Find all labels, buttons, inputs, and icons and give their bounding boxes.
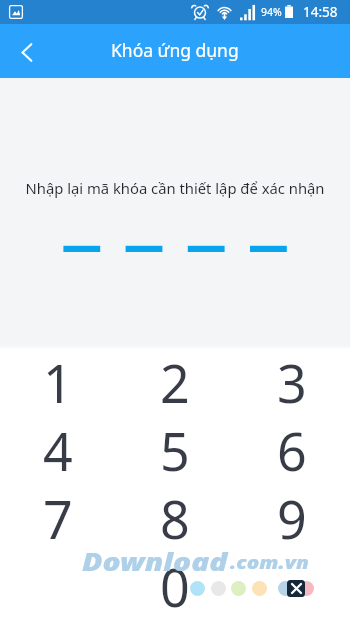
staticText: Download (82, 544, 227, 578)
staticText: 7 (43, 483, 73, 551)
staticText: 14:58 (303, 3, 338, 21)
button[interactable] (0, 551, 116, 619)
staticText: 0 (160, 551, 190, 619)
staticText: 94% (261, 5, 282, 19)
staticText: Nhập lại mã khóa cần thiết lập để xác nh… (0, 178, 350, 198)
button[interactable]: 5 (116, 415, 233, 483)
staticText: 5 (160, 415, 190, 483)
staticText: 9 (277, 483, 307, 551)
button[interactable]: 8 (116, 483, 233, 551)
staticText: .com.vn (230, 549, 310, 573)
button[interactable]: 3 (233, 347, 350, 415)
button[interactable]: 7 (0, 483, 116, 551)
button[interactable]: 1 (0, 347, 116, 415)
button[interactable] (233, 551, 350, 619)
button[interactable]: 2 (116, 347, 233, 415)
staticText: 2 (160, 347, 190, 415)
staticText: 8 (160, 483, 190, 551)
staticText: Khóa ứng dụng (111, 38, 239, 62)
button[interactable]: Back (5, 31, 47, 73)
button[interactable]: 4 (0, 415, 116, 483)
button[interactable]: 0 (116, 551, 233, 619)
staticText: 4 (43, 415, 73, 483)
staticText: 3 (277, 347, 307, 415)
staticText: 1 (43, 347, 73, 415)
staticText: 6 (277, 415, 307, 483)
button[interactable]: 9 (233, 483, 350, 551)
button[interactable]: 6 (233, 415, 350, 483)
